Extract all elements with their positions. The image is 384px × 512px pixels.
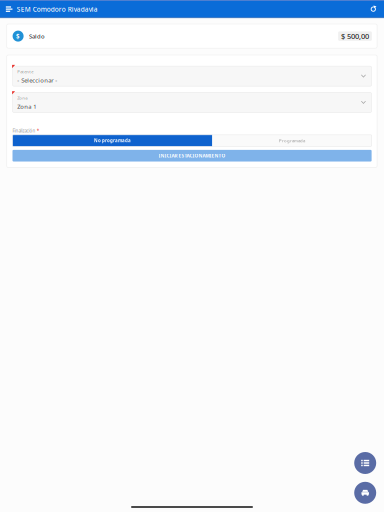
staticText: No programada — [94, 138, 131, 144]
staticText: SEM Comodoro Rivadavia — [17, 5, 98, 13]
button[interactable]: Zona — [12, 92, 372, 112]
button[interactable]: Patente — [12, 66, 372, 86]
staticText: Zona 1 — [17, 102, 36, 110]
staticText: $ — [16, 32, 20, 40]
staticText: Patente — [17, 69, 33, 74]
staticText: * — [37, 128, 39, 134]
button[interactable]: INICIAR ESTACIONAMIENTO — [12, 150, 372, 161]
button[interactable]: No programada — [12, 135, 212, 146]
button[interactable]: Mis estacionamientos — [354, 452, 376, 474]
staticText: INICIAR ESTACIONAMIENTO — [159, 152, 226, 159]
button[interactable]: Refresh — [370, 1, 377, 17]
button[interactable]: Programada — [212, 135, 372, 146]
button[interactable]: Menu — [6, 1, 12, 17]
staticText: Finalización — [12, 128, 35, 134]
staticText: Zona — [17, 95, 27, 101]
staticText: $ 500,00 — [341, 31, 369, 41]
staticText: - Seleccionar - — [17, 76, 57, 84]
staticText: Programada — [279, 138, 305, 143]
staticText: Saldo — [29, 32, 45, 40]
button[interactable]: Mis vehiculos — [354, 482, 376, 504]
